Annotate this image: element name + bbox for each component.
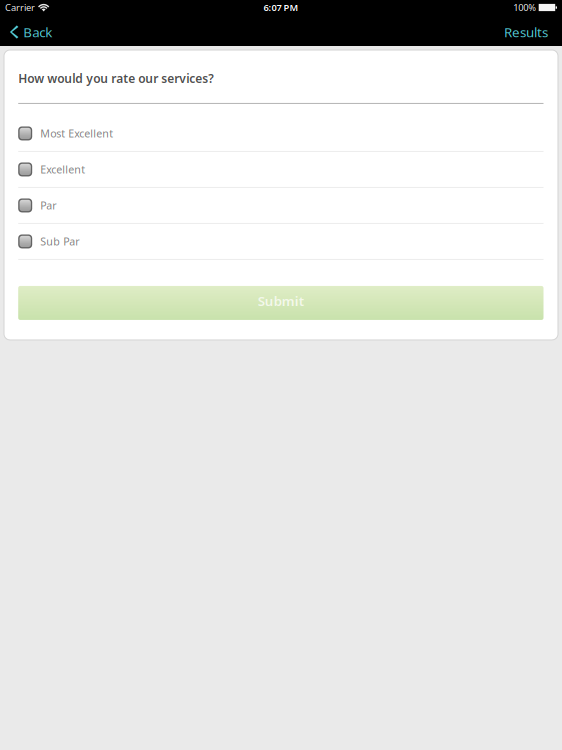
staticText: 100% <box>513 1 536 14</box>
staticText: Sub Par <box>40 234 79 249</box>
staticText: Results <box>504 23 548 41</box>
button[interactable]: Submit <box>18 286 543 320</box>
button[interactable]: Par <box>18 188 543 223</box>
button[interactable]: Results <box>490 18 562 46</box>
staticText: 6:07 PM <box>263 1 298 14</box>
button[interactable]: Sub Par <box>18 224 543 259</box>
staticText: Submit <box>258 292 304 310</box>
staticText: Most Excellent <box>40 126 113 141</box>
staticText: Carrier <box>5 1 35 14</box>
button[interactable]: Back <box>0 18 62 46</box>
staticText: Back <box>23 23 52 41</box>
staticText: Par <box>40 198 56 213</box>
staticText: How would you rate our services? <box>18 70 214 86</box>
button[interactable]: Excellent <box>18 152 543 187</box>
staticText: Excellent <box>40 162 85 177</box>
button[interactable]: Most Excellent <box>18 116 543 151</box>
